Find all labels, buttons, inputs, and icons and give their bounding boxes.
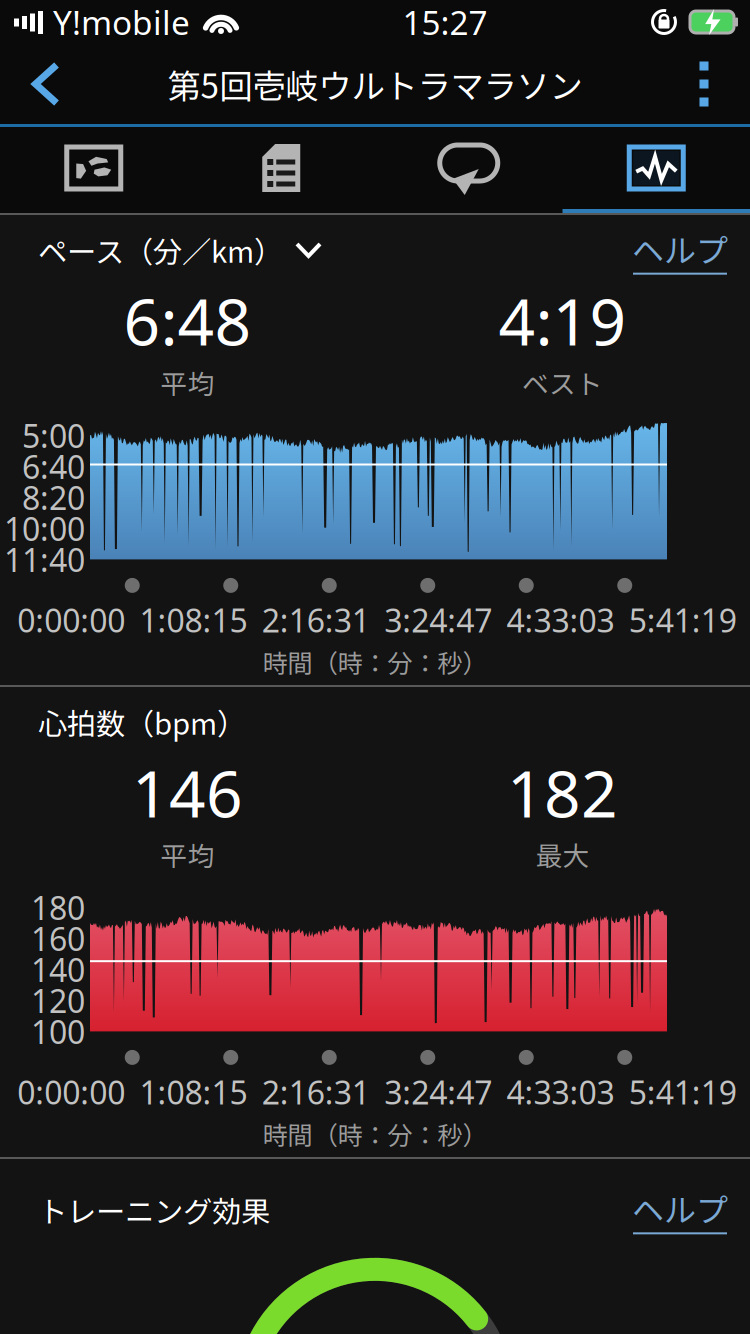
button[interactable]: Laps [375, 127, 562, 213]
staticText: 3:24:47 [384, 1071, 492, 1113]
staticText: 15:27 [402, 0, 487, 44]
button[interactable]: ヘルプ [632, 225, 728, 275]
staticText: 10:00 [4, 507, 85, 538]
staticText: 182 [507, 750, 618, 835]
staticText: ヘルプ [632, 1185, 728, 1231]
staticText: 5:41:19 [629, 1071, 737, 1113]
staticText: 2:16:31 [262, 1071, 370, 1113]
staticText: 4:19 [498, 278, 626, 363]
staticText: 時間（時：分：秒） [262, 643, 487, 680]
staticText: 第5回壱岐ウルトラマラソン [167, 60, 582, 108]
staticText: 6:48 [123, 278, 251, 363]
staticText: 6:40 [22, 445, 85, 476]
staticText: 8:20 [22, 476, 85, 507]
staticText: Y!mobile [53, 0, 190, 44]
staticText: 146 [132, 750, 243, 835]
staticText: ベスト [522, 363, 603, 402]
staticText: 平均 [160, 835, 214, 874]
staticText: 5:41:19 [629, 599, 737, 641]
staticText: 時間（時：分：秒） [262, 1115, 487, 1152]
button[interactable]: More options [658, 44, 750, 124]
staticText: 最大 [535, 835, 589, 874]
staticText: 1:08:15 [139, 599, 247, 641]
button[interactable]: Map [0, 127, 187, 213]
staticText: 心拍数（bpm） [38, 701, 246, 743]
staticText: 平均 [160, 363, 214, 402]
staticText: ヘルプ [632, 225, 728, 272]
button[interactable]: Details [187, 127, 375, 213]
staticText: 180 [31, 886, 85, 917]
staticText: 2:16:31 [262, 599, 370, 641]
staticText: ペース（分／km） [38, 229, 283, 271]
staticText: 4:33:03 [506, 599, 614, 641]
staticText: 0:00:00 [17, 1071, 125, 1113]
staticText: 160 [31, 917, 85, 948]
staticText: 11:40 [4, 538, 85, 569]
staticText: 1:08:15 [139, 1071, 247, 1113]
staticText: 100 [31, 1010, 85, 1041]
button[interactable]: ヘルプ [632, 1185, 728, 1234]
staticText: 5:00 [22, 414, 85, 445]
button[interactable]: Charts [562, 127, 750, 213]
staticText: トレーニング効果 [38, 1188, 270, 1231]
staticText: 4:33:03 [506, 1071, 614, 1113]
button[interactable]: Back [0, 44, 92, 124]
button[interactable]: ペース（分／km） [38, 223, 320, 277]
staticText: 120 [31, 979, 85, 1010]
staticText: 140 [31, 948, 85, 979]
staticText: 3:24:47 [384, 599, 492, 641]
staticText: 0:00:00 [17, 599, 125, 641]
